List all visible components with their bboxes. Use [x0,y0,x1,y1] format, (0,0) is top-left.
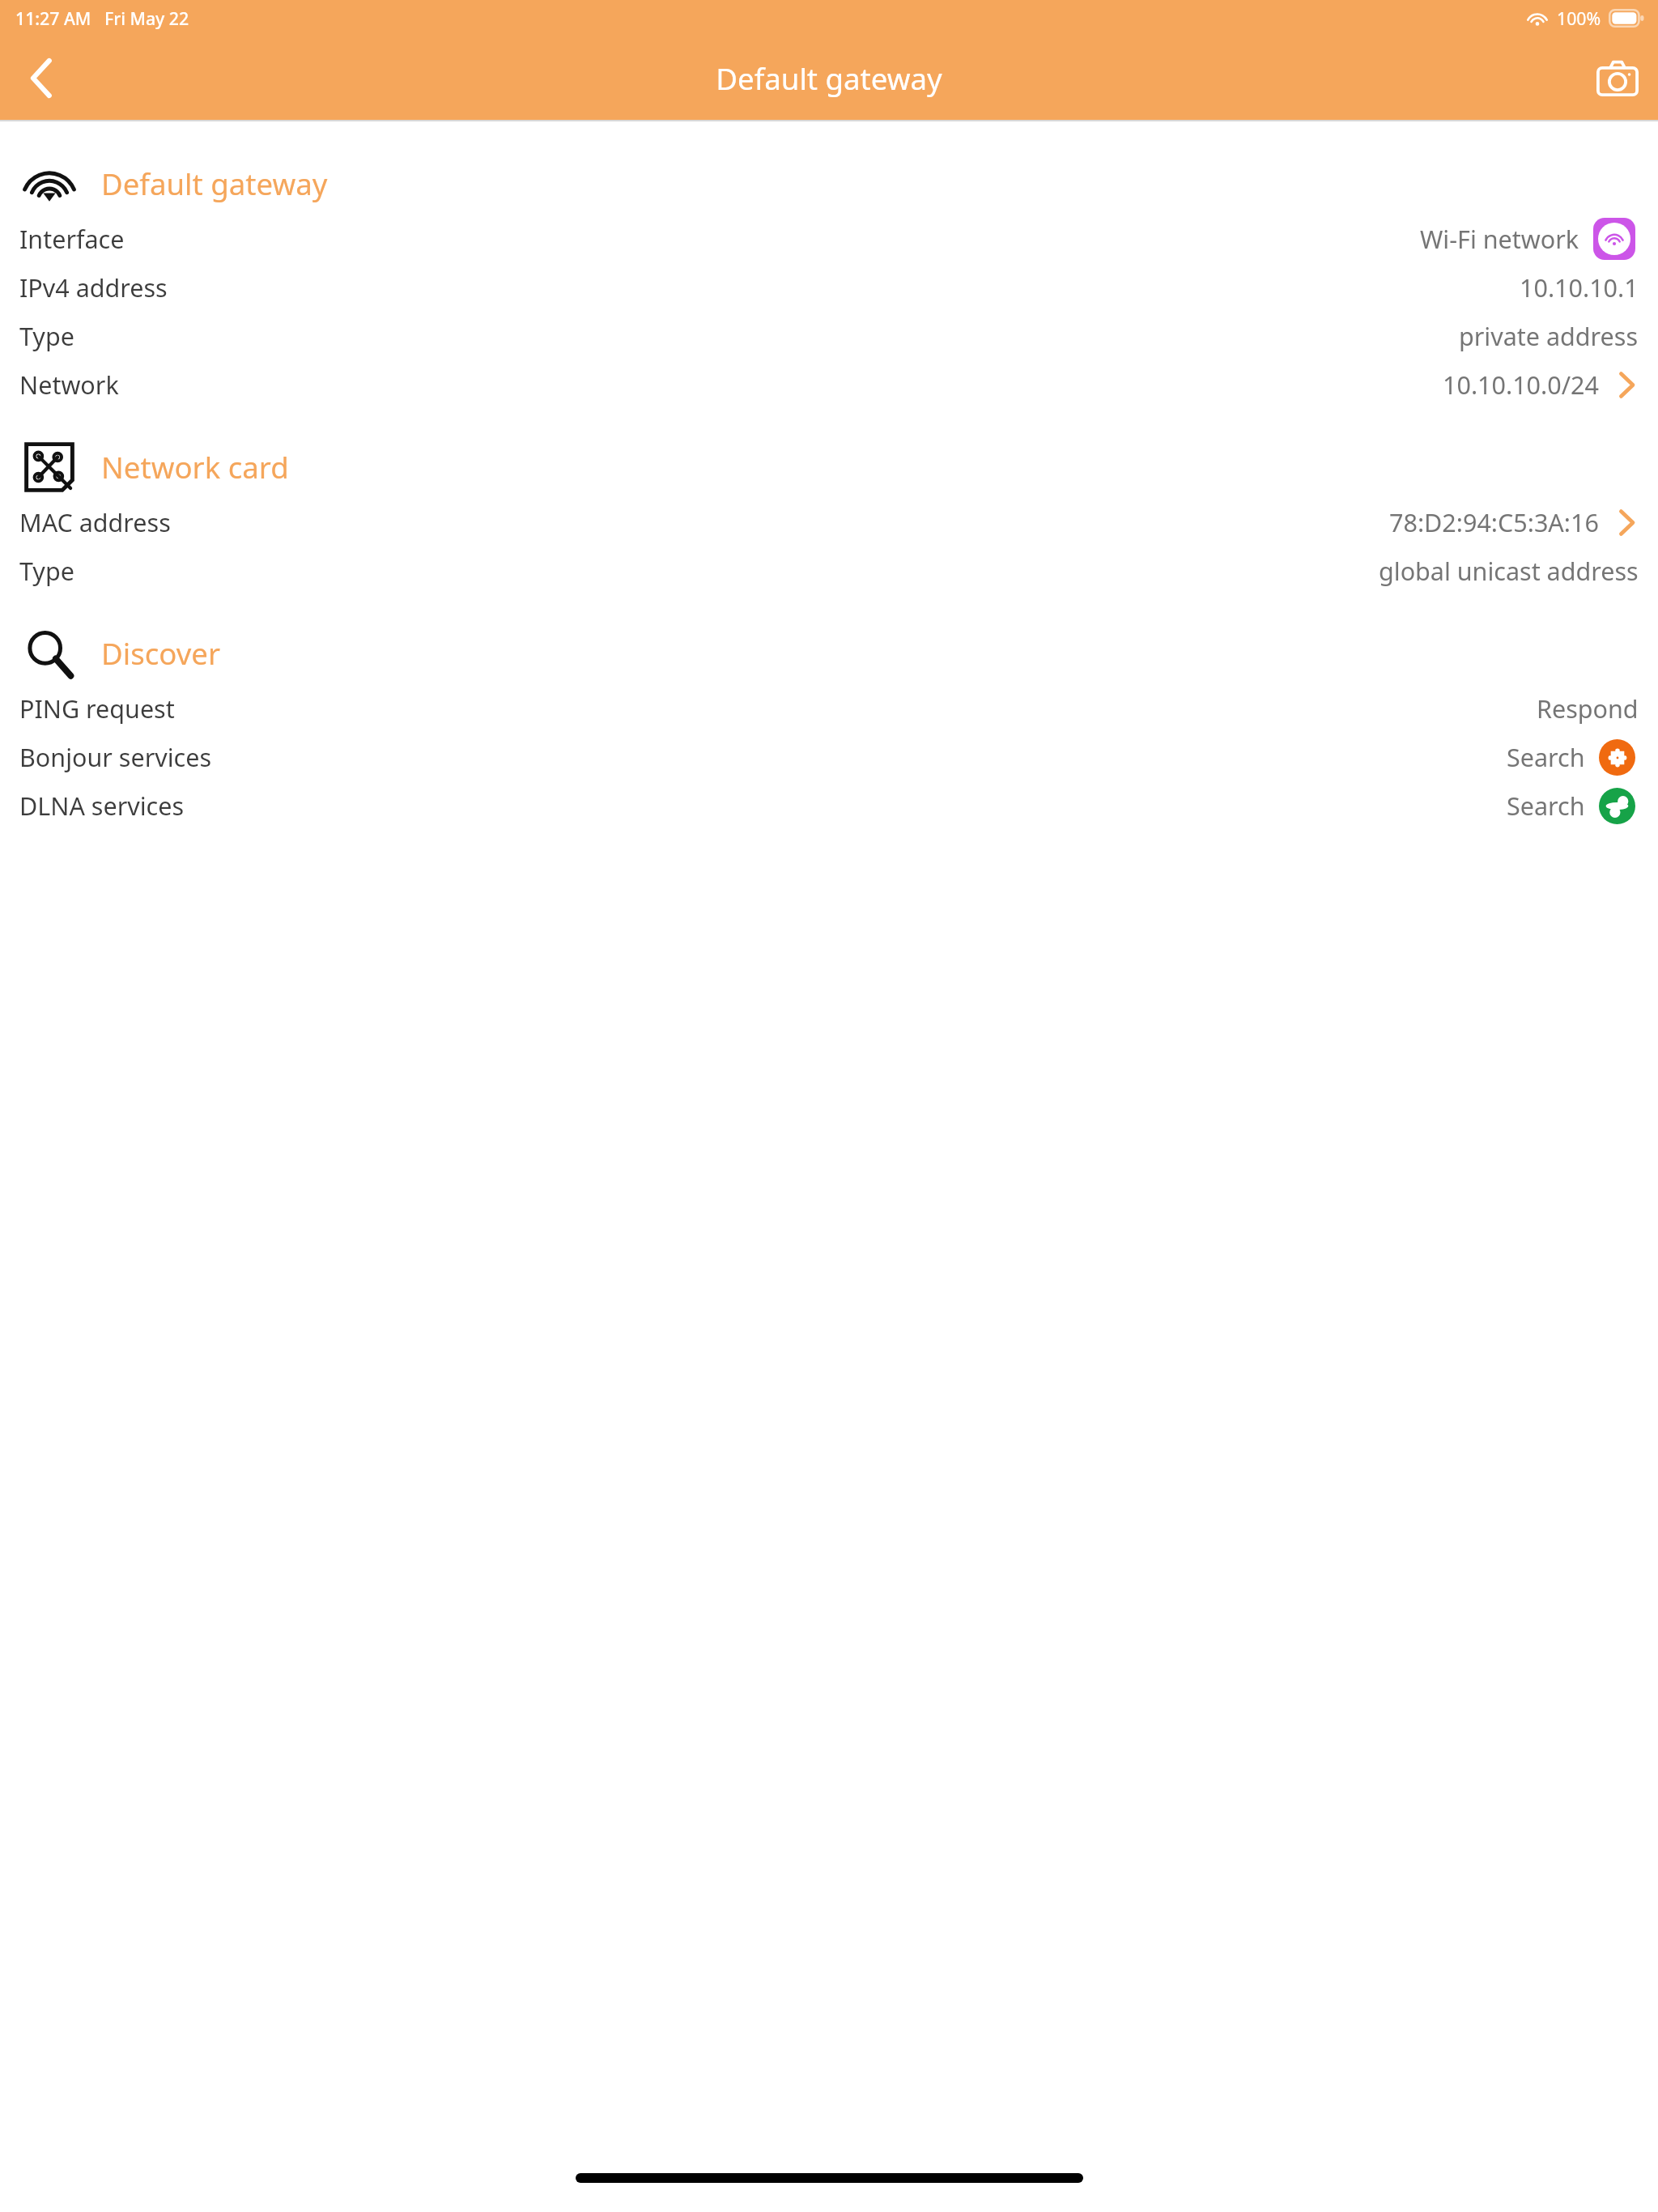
button[interactable]: IPv4 address [0,263,1658,312]
staticText: Type [19,319,74,353]
staticText: MAC address [19,505,171,539]
button[interactable]: Bonjour services [0,733,1658,781]
staticText: 78:D2:94:C5:3A:16 [1389,505,1599,539]
button[interactable]: DLNA services [0,781,1658,830]
staticText: IPv4 address [19,270,168,304]
button[interactable]: Default gateway [0,152,1658,215]
staticText: Type [19,554,74,588]
staticText: Bonjour services [19,740,212,774]
button[interactable]: Type [0,312,1658,360]
button[interactable]: Network card [0,436,1658,498]
staticText: 11:27 AM Fri May 22 [15,6,189,30]
staticText: Discover [101,633,220,674]
button[interactable]: Type [0,547,1658,595]
button[interactable]: Network [0,360,1658,409]
staticText: Network [19,368,119,402]
staticText: Search [1507,740,1585,774]
button[interactable]: PING request [0,684,1658,733]
button[interactable]: MAC address [0,498,1658,547]
staticText: private address [1459,319,1639,353]
staticText: global unicast address [1379,554,1639,588]
staticText: Default gateway [716,58,942,99]
staticText: DLNA services [19,789,185,823]
button[interactable]: Back [0,37,82,119]
staticText: Network card [101,447,289,487]
staticText: Wi-Fi network [1420,222,1579,256]
staticText: Interface [19,222,125,256]
staticText: Default gateway [101,164,328,204]
staticText: 10.10.10.1 [1520,270,1639,304]
button[interactable]: Discover [0,622,1658,684]
staticText: Search [1507,789,1585,823]
button[interactable]: Interface [0,215,1658,263]
staticText: 10.10.10.0/24 [1443,368,1599,402]
staticText: PING request [19,691,175,725]
staticText: 100% [1557,6,1601,30]
staticText: Respond [1537,691,1639,725]
button[interactable]: Camera [1576,37,1658,119]
